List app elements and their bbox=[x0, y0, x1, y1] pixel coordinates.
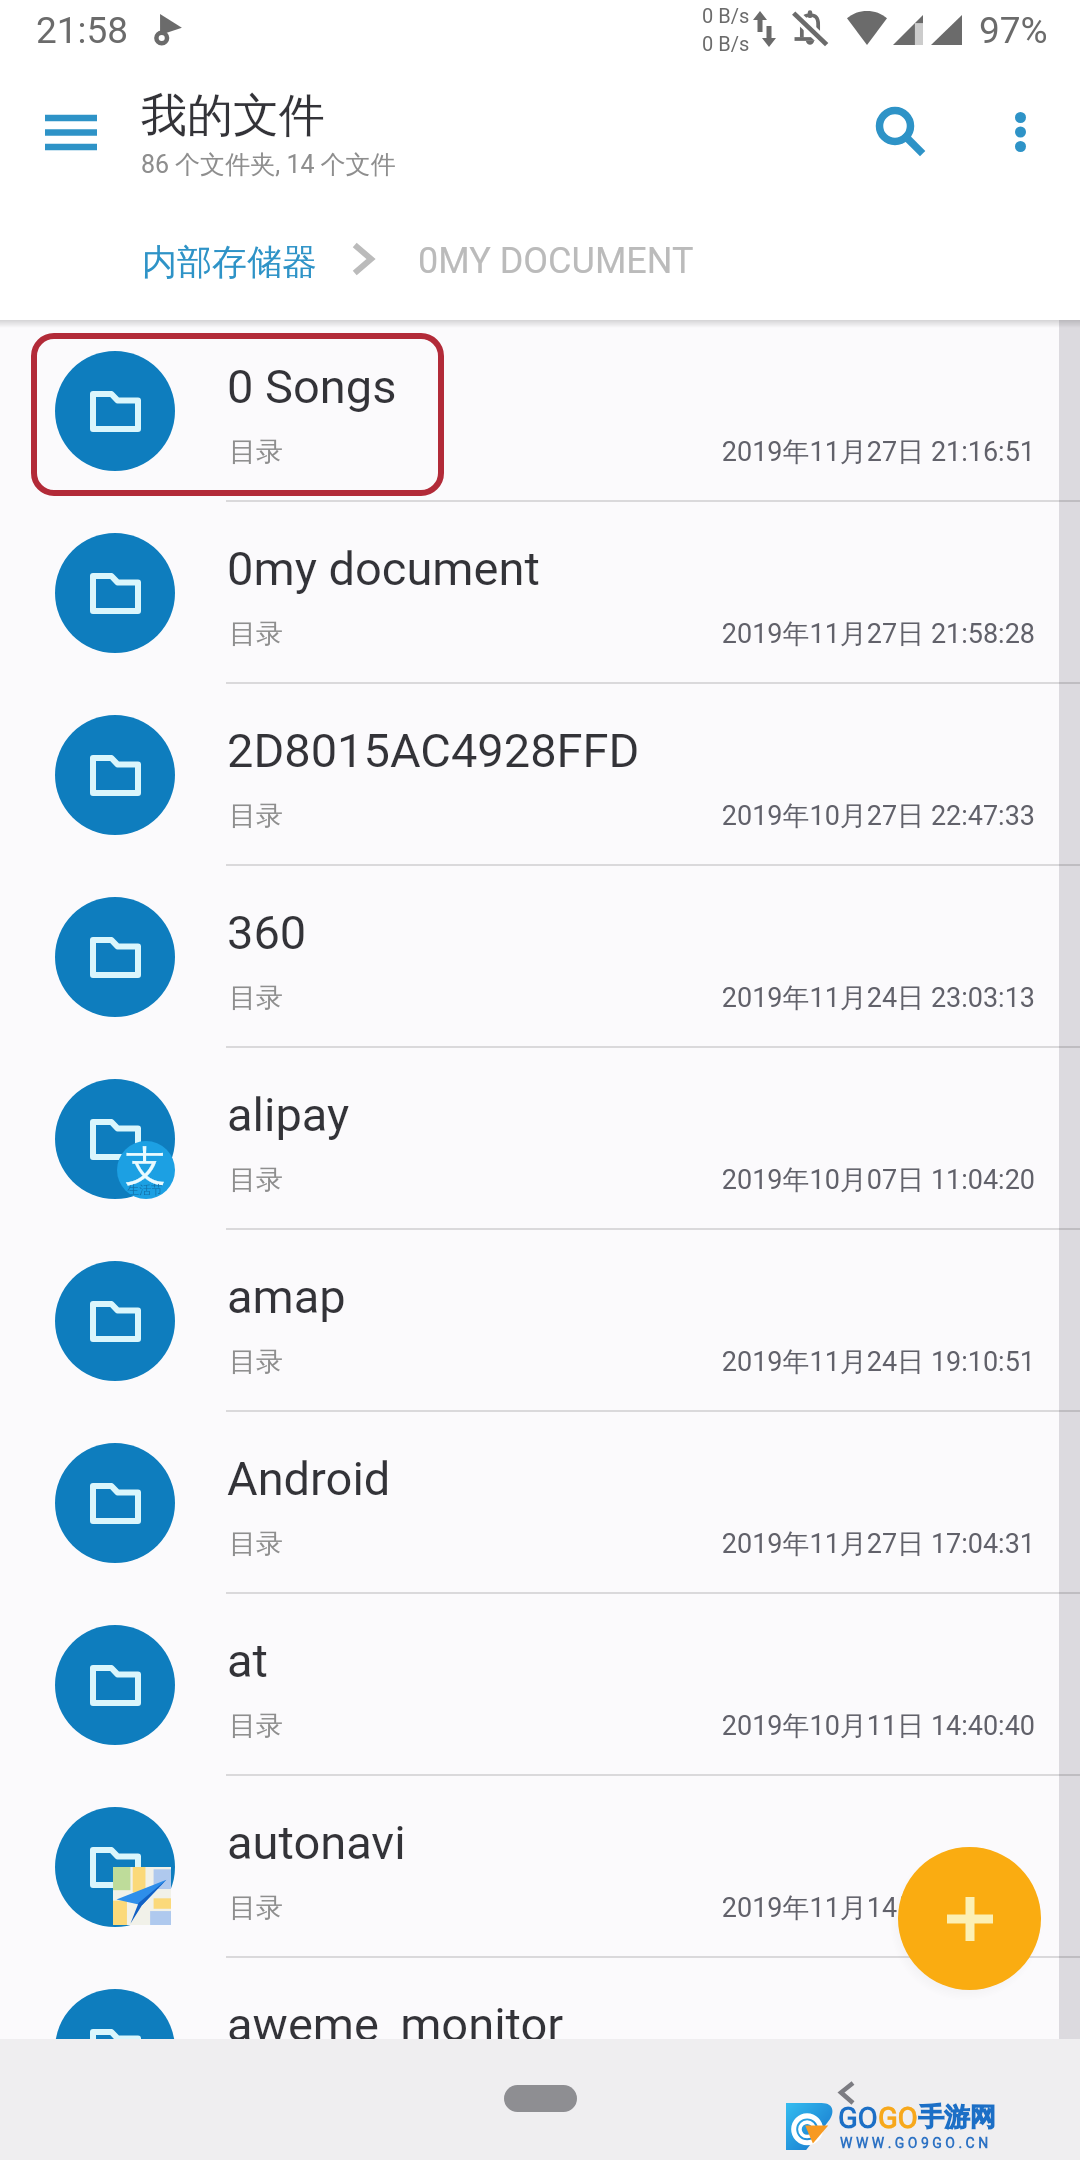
staticText: 目录 bbox=[229, 617, 283, 651]
staticText: 2D8015AC4928FFD bbox=[227, 723, 640, 778]
staticText: W W W . G O 9 G O . C N bbox=[840, 2135, 989, 2151]
staticText: 支 bbox=[125, 1141, 166, 1193]
staticText: 手游网 bbox=[918, 2101, 996, 2134]
staticText: GO bbox=[878, 2101, 918, 2135]
staticText: 2019年11月14日 12:02:18 bbox=[620, 1891, 1035, 1925]
staticText: 0MY DOCUMENT bbox=[418, 240, 694, 282]
button[interactable]: amap bbox=[0, 1230, 1080, 1412]
button[interactable]: Android bbox=[0, 1412, 1080, 1594]
staticText: 目录 bbox=[229, 799, 283, 833]
staticText: 2019年11月24日 19:10:51 bbox=[620, 1345, 1035, 1379]
staticText: alipay bbox=[227, 1087, 350, 1142]
staticText: 97% bbox=[979, 9, 1048, 52]
button[interactable]: 内部存储器 bbox=[130, 228, 326, 304]
button[interactable]: Home bbox=[504, 2085, 577, 2112]
staticText: 2019年11月27日 21:16:51 bbox=[620, 435, 1035, 469]
staticText: 2019年10月11日 14:40:40 bbox=[620, 1709, 1035, 1743]
staticText: 360 bbox=[227, 905, 307, 960]
staticText: 目录 bbox=[229, 981, 283, 1015]
button[interactable]: More options bbox=[972, 79, 1068, 175]
button[interactable]: 2D8015AC4928FFD bbox=[0, 684, 1080, 866]
staticText: 内部存储器 bbox=[142, 240, 317, 284]
button[interactable]: Back bbox=[822, 2065, 872, 2115]
staticText: 目录 bbox=[229, 1345, 283, 1379]
staticText: 0 Songs bbox=[227, 359, 397, 414]
button[interactable]: 0MY DOCUMENT bbox=[406, 228, 706, 304]
staticText: 0 B/s bbox=[702, 4, 750, 27]
button[interactable]: 0 Songs bbox=[0, 320, 1080, 502]
staticText: 生活节 bbox=[127, 1182, 163, 1197]
button[interactable]: Open navigation menu bbox=[21, 82, 121, 182]
staticText: 2019年11月27日 21:58:28 bbox=[620, 617, 1035, 651]
staticText: 目录 bbox=[229, 1891, 283, 1925]
staticText: amap bbox=[227, 1269, 346, 1324]
staticText: 0 B/s bbox=[702, 32, 750, 55]
button[interactable]: 360 bbox=[0, 866, 1080, 1048]
staticText: 86 个文件夹, 14 个文件 bbox=[141, 149, 396, 180]
button[interactable]: autonavi bbox=[0, 1776, 1080, 1958]
button[interactable]: Search bbox=[846, 79, 940, 173]
button[interactable]: at bbox=[0, 1594, 1080, 1776]
staticText: GO bbox=[838, 2101, 878, 2135]
staticText: 0my document bbox=[227, 541, 540, 596]
button[interactable]: aweme_monitor bbox=[0, 1958, 1080, 2039]
staticText: 我的文件 bbox=[141, 87, 325, 145]
staticText: 2019年10月27日 22:47:33 bbox=[620, 799, 1035, 833]
staticText: at bbox=[227, 1633, 268, 1688]
staticText: 21:58 bbox=[36, 9, 129, 52]
staticText: 目录 bbox=[229, 1709, 283, 1743]
staticText: 2019年11月27日 17:04:31 bbox=[620, 1527, 1035, 1561]
button[interactable]: 支 bbox=[0, 1048, 1080, 1230]
staticText: 2019年11月24日 23:03:13 bbox=[620, 981, 1035, 1015]
staticText: Android bbox=[227, 1451, 391, 1506]
staticText: 2019年10月07日 11:04:20 bbox=[620, 1163, 1035, 1197]
staticText: autonavi bbox=[227, 1815, 406, 1870]
button[interactable]: Add bbox=[898, 1847, 1041, 1990]
staticText: 目录 bbox=[229, 1163, 283, 1197]
staticText: 目录 bbox=[229, 435, 283, 469]
button[interactable]: 0my document bbox=[0, 502, 1080, 684]
staticText: aweme_monitor bbox=[227, 1997, 564, 2039]
staticText: 目录 bbox=[229, 1527, 283, 1561]
